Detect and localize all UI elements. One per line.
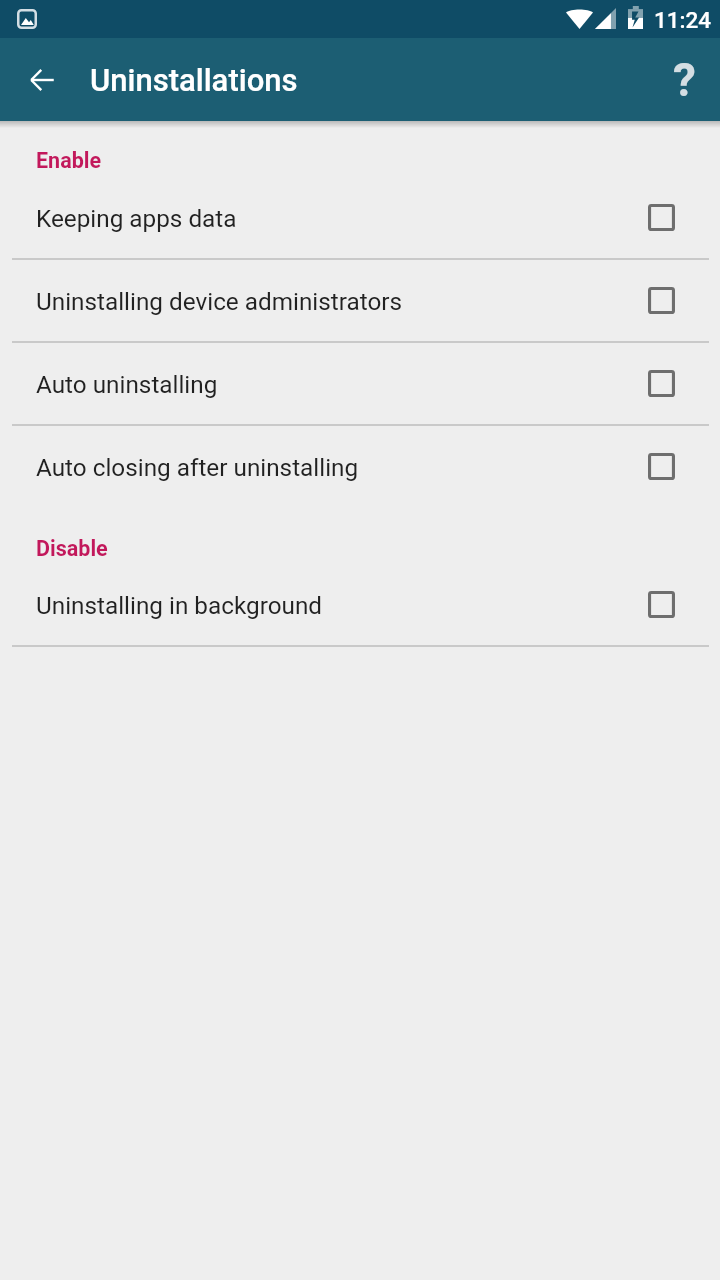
staticText: Uninstalling device administrators [36, 287, 403, 315]
button[interactable]: Toggle Uninstalling in background [628, 571, 692, 635]
staticText: 11:24 [654, 7, 712, 33]
staticText: Disable [36, 536, 108, 561]
button[interactable]: Toggle Keeping apps data [628, 184, 692, 248]
button[interactable]: Disable [0, 524, 720, 566]
button[interactable]: Toggle Uninstalling device administrator… [628, 267, 692, 331]
staticText: Uninstalling in background [36, 591, 323, 619]
button[interactable]: Help [660, 56, 708, 104]
button[interactable]: Toggle Auto closing after uninstalling [628, 433, 692, 497]
staticText: Auto closing after uninstalling [36, 453, 359, 481]
button[interactable]: Navigate up [18, 56, 66, 104]
button[interactable]: Enable [0, 136, 720, 178]
button[interactable]: Toggle Auto uninstalling [628, 350, 692, 414]
staticText: Enable [36, 148, 102, 173]
button[interactable]: Uninstalling device administrators [0, 257, 720, 340]
staticText: ? [673, 53, 696, 101]
button[interactable]: Auto closing after uninstalling [0, 423, 720, 506]
staticText: Keeping apps data [36, 204, 237, 232]
staticText: Uninstallations [90, 62, 298, 98]
button[interactable]: Uninstalling in background [0, 561, 720, 644]
button[interactable]: Auto uninstalling [0, 340, 720, 423]
staticText: Auto uninstalling [36, 370, 218, 398]
button[interactable]: Keeping apps data [0, 174, 720, 257]
